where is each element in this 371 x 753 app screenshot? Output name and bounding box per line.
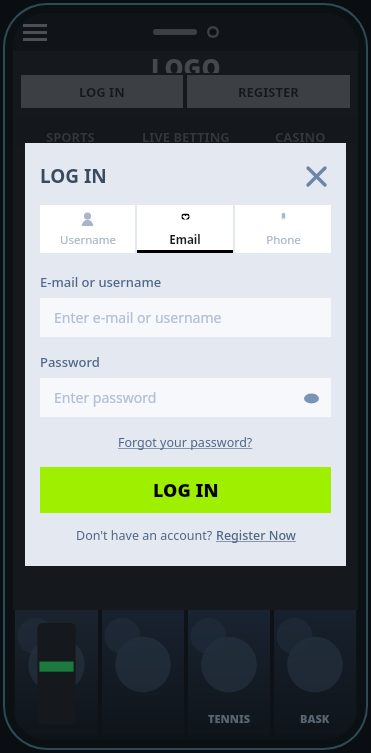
- button[interactable]: Close: [301, 161, 331, 191]
- staticText: CASINO: [275, 128, 326, 146]
- button[interactable]: Enter password: [40, 378, 331, 417]
- staticText: Password: [40, 353, 100, 371]
- button[interactable]: Phone: [235, 205, 331, 253]
- button[interactable]: LOG IN: [21, 75, 183, 108]
- button[interactable]: Forgot your password?: [118, 434, 253, 451]
- staticText: SPORTS: [46, 128, 95, 146]
- button[interactable]: LIVE BETTING: [128, 116, 243, 146]
- button[interactable]: Register Now: [216, 527, 296, 544]
- button[interactable]: BASK: [274, 610, 356, 740]
- staticText: Email: [169, 232, 201, 248]
- staticText: Phone: [266, 232, 301, 248]
- button[interactable]: CASINO: [243, 116, 358, 146]
- staticText: LOGO: [151, 51, 221, 73]
- staticText: LIVE BETTING: [142, 128, 230, 146]
- button[interactable]: Show password: [301, 388, 321, 408]
- staticText: LOG IN: [153, 478, 219, 503]
- staticText: Username: [60, 232, 116, 248]
- button[interactable]: Email: [137, 205, 233, 253]
- button[interactable]: [15, 610, 98, 740]
- staticText: Enter password: [54, 388, 157, 407]
- button[interactable]: [102, 610, 184, 740]
- button[interactable]: REGISTER: [187, 75, 350, 108]
- staticText: TENNIS: [208, 711, 251, 726]
- staticText: LOG IN: [40, 163, 107, 189]
- staticText: BASK: [300, 711, 330, 726]
- button[interactable]: Enter e-mail or username: [40, 298, 331, 337]
- staticText: LOG IN: [79, 83, 125, 101]
- staticText: Don't have an account?: [76, 527, 216, 544]
- button[interactable]: TENNIS: [188, 610, 270, 740]
- staticText: E-mail or username: [40, 273, 162, 291]
- staticText: REGISTER: [238, 83, 299, 101]
- button[interactable]: LOG IN: [40, 467, 331, 513]
- staticText: Enter e-mail or username: [54, 308, 222, 327]
- button[interactable]: SPORTS: [13, 116, 128, 146]
- button[interactable]: Menu: [23, 24, 47, 41]
- button[interactable]: Username: [40, 205, 135, 253]
